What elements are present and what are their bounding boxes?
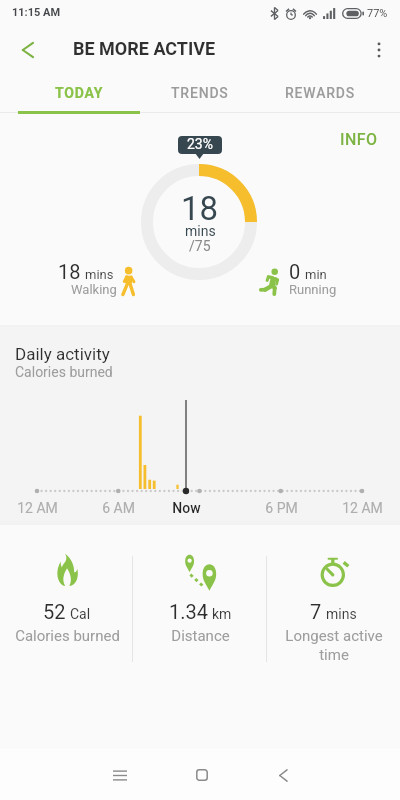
staticText: 6 AM (102, 500, 135, 516)
button[interactable]: 7 (267, 525, 400, 664)
staticText: TODAY (55, 85, 104, 101)
button[interactable]: TRENDS (139, 74, 260, 112)
staticText: 11:15 AM (12, 6, 61, 19)
staticText: 18 (58, 260, 81, 283)
staticText: 7 (310, 600, 322, 623)
staticText: mins (185, 223, 216, 239)
staticText: INFO (340, 130, 378, 149)
staticText: Now (172, 500, 201, 516)
staticText: Cal (70, 606, 91, 622)
staticText: Daily activity (15, 344, 110, 364)
staticText: 18 (181, 189, 219, 228)
button[interactable]: Back (9, 32, 45, 68)
button[interactable]: TODAY (19, 74, 139, 112)
staticText: 12 AM (342, 500, 383, 516)
staticText: 77% (367, 7, 388, 20)
staticText: km (212, 606, 232, 622)
staticText: 1.34 (169, 600, 208, 623)
staticText: Calories burned (15, 364, 113, 380)
staticText: 0 (289, 260, 301, 283)
staticText: mins (326, 606, 357, 622)
button[interactable]: REWARDS (260, 74, 381, 112)
button[interactable]: 1.34 (134, 525, 267, 645)
staticText: Calories burned (15, 627, 120, 645)
staticText: 52 (43, 600, 66, 623)
button[interactable]: INFO (330, 126, 388, 152)
staticText: mins (85, 267, 114, 282)
staticText: Running (289, 282, 337, 297)
button[interactable]: Home (182, 755, 222, 795)
button[interactable]: 52 (0, 525, 134, 645)
staticText: /75 (189, 238, 211, 254)
staticText: TRENDS (171, 85, 229, 101)
staticText: 6 PM (265, 500, 298, 516)
staticText: BE MORE ACTIVE (73, 38, 216, 59)
staticText: REWARDS (285, 85, 356, 101)
staticText: min (305, 267, 327, 282)
staticText: Distance (171, 627, 230, 645)
button[interactable]: More options (362, 33, 396, 67)
staticText: 23% (187, 136, 213, 152)
staticText: Walking (71, 282, 117, 297)
staticText: 12 AM (17, 500, 58, 516)
button[interactable]: Back (263, 755, 303, 795)
staticText: Longest active time (285, 627, 383, 664)
button[interactable]: Menu (100, 755, 140, 795)
